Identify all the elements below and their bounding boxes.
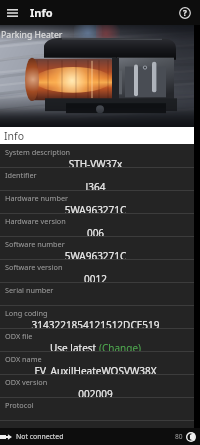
button[interactable]: Open navigation menu (0, 0, 24, 25)
button[interactable]: ODX name (0, 352, 200, 375)
staticText (0, 410, 191, 421)
staticText: Parking Heater (1, 29, 63, 41)
staticText: Info (30, 5, 53, 20)
staticText: 5WA963271C (0, 249, 191, 260)
staticText (0, 295, 191, 306)
staticText: Use latest (50, 341, 99, 352)
button[interactable]: Software version (0, 260, 200, 283)
staticText: EV_AuxilHeateWOSVW38X (0, 364, 191, 375)
staticText: 002009 (0, 387, 191, 398)
button[interactable]: Software number (0, 237, 200, 260)
staticText: ? (183, 7, 187, 18)
staticText: ODX file (5, 331, 33, 341)
button[interactable]: Long coding (0, 306, 200, 329)
staticText: Identifier (5, 170, 37, 180)
staticText: Software version (5, 262, 63, 272)
staticText: Software number (5, 239, 65, 249)
staticText: 3143221854121512DCE519 (0, 318, 191, 329)
staticText: ODX name (5, 354, 42, 364)
staticText: 0012 (0, 272, 191, 283)
staticText: 006 (0, 226, 191, 237)
staticText: STH-VW37x (0, 157, 191, 168)
staticText: 80 (175, 432, 183, 441)
button[interactable]: Help (172, 0, 198, 25)
button[interactable]: ODX version (0, 375, 200, 398)
staticText: Hardware version (5, 216, 66, 226)
staticText: Serial number (5, 285, 54, 295)
button[interactable]: System description (0, 145, 200, 168)
button[interactable]: Serial number (0, 283, 200, 306)
button[interactable]: Protocol (0, 398, 200, 421)
button[interactable]: Hardware number (0, 191, 200, 214)
staticText: Not connected (16, 432, 64, 441)
staticText: (Change) (99, 341, 142, 352)
staticText: Info (4, 129, 25, 143)
staticText: Long coding (5, 308, 48, 318)
other: Connection status (0, 434, 12, 440)
staticText: Hardware number (5, 193, 69, 203)
staticText: J364 (0, 180, 191, 191)
staticText: System description (5, 147, 71, 157)
button[interactable]: Identifier (0, 168, 200, 191)
button[interactable]: Hardware version (0, 214, 200, 237)
staticText: Protocol (5, 400, 34, 410)
button[interactable]: ODX file (0, 329, 200, 352)
staticText: 5WA963271C (0, 203, 191, 214)
other: Battery voltage (186, 432, 196, 442)
staticText: ODX version (5, 377, 48, 387)
